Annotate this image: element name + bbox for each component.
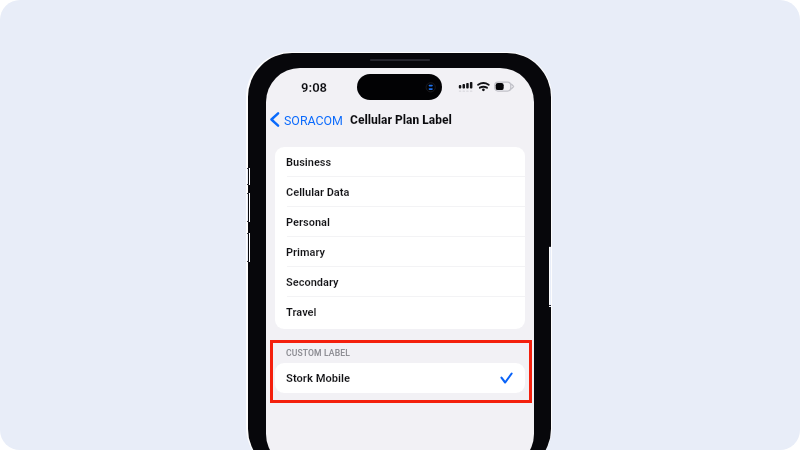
staticText: Primary bbox=[286, 246, 326, 259]
button[interactable]: Secondary bbox=[275, 267, 525, 297]
button[interactable]: Personal bbox=[275, 207, 525, 237]
staticText: Secondary bbox=[286, 276, 339, 289]
staticText: SORACOM bbox=[284, 113, 343, 128]
button[interactable]: Business bbox=[275, 147, 525, 177]
button[interactable]: Cellular Data bbox=[275, 177, 525, 207]
staticText: Cellular Plan Label bbox=[350, 113, 452, 127]
button[interactable]: Stork Mobile bbox=[275, 363, 525, 393]
staticText: Personal bbox=[286, 216, 330, 229]
button[interactable]: Back to SORACOM bbox=[268, 109, 343, 131]
button[interactable]: Travel bbox=[275, 297, 525, 327]
staticText: Travel bbox=[286, 306, 317, 319]
staticText: Cellular Data bbox=[286, 186, 350, 199]
button[interactable]: Primary bbox=[275, 237, 525, 267]
staticText: Business bbox=[286, 156, 332, 169]
staticText: 9:08 bbox=[301, 80, 328, 95]
staticText: Stork Mobile bbox=[286, 372, 351, 385]
staticText: CUSTOM LABEL bbox=[286, 348, 350, 358]
